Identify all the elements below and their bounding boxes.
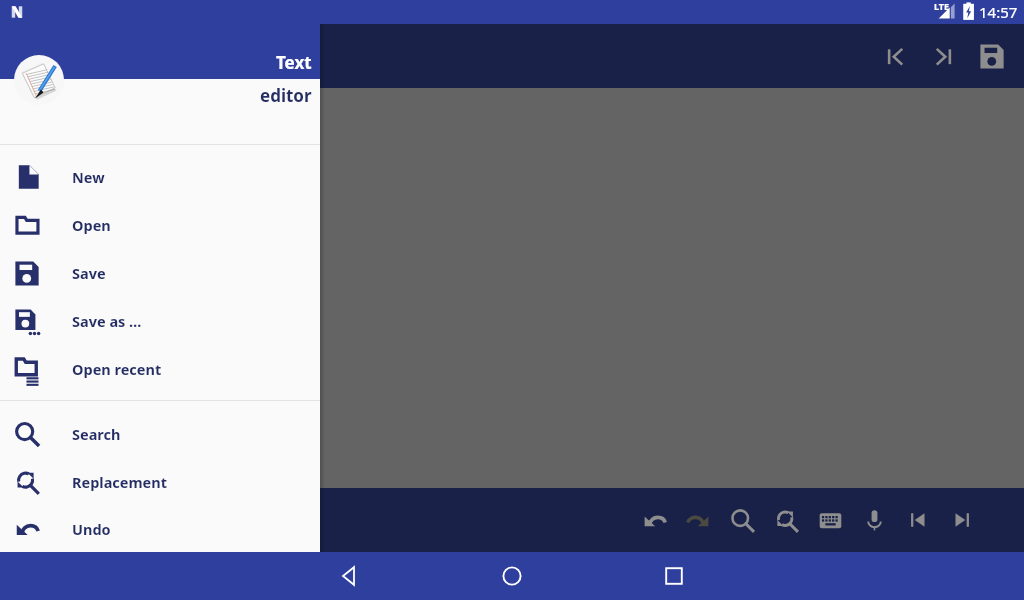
staticText: Save as … [72,311,142,331]
button[interactable]: Save as … [0,297,320,345]
button[interactable]: Search [0,410,320,458]
staticText: 14:57 [979,2,1018,22]
button[interactable]: Skip to end [919,32,967,80]
staticText: Replacement [72,472,167,492]
staticText: Text [276,51,312,74]
button[interactable]: Undo [0,506,320,552]
staticText: editor [260,84,312,107]
button[interactable]: Save [967,32,1015,80]
staticText: New [72,167,105,187]
button[interactable]: Open recent [0,345,320,393]
button[interactable]: Search [720,498,764,542]
staticText: LTE [934,0,950,12]
button[interactable]: Home [488,552,536,600]
button[interactable]: Back [326,552,374,600]
staticText: Open [72,215,111,235]
button[interactable]: Keyboard [808,498,852,542]
button[interactable]: Save [0,249,320,297]
staticText: Search [72,424,121,444]
button[interactable]: Redo [676,498,720,542]
button[interactable]: Previous [896,498,940,542]
button[interactable]: New [0,153,320,201]
button[interactable]: Undo [632,498,676,542]
button[interactable]: Replace [764,498,808,542]
button[interactable]: Replacement [0,458,320,506]
staticText: Save [72,263,106,283]
button[interactable]: Voice input [852,498,896,542]
button[interactable]: Text [0,0,320,79]
button[interactable]: Open [0,201,320,249]
button[interactable]: Next [940,498,984,542]
staticText: Open recent [72,359,162,379]
button[interactable]: Skip to start [871,32,919,80]
button[interactable]: Recent apps [650,552,698,600]
staticText: Undo [72,519,111,539]
